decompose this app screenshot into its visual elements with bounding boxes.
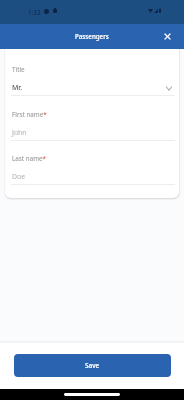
button[interactable]: Close [160,29,175,44]
staticText: 1:32 [28,8,41,17]
staticText: Doe [12,172,26,181]
button[interactable]: Last name* [5,140,179,184]
button[interactable]: Title [5,51,179,95]
staticText: Passengers [75,32,109,40]
staticText: Title [12,65,25,74]
staticText: Mr. [12,83,23,92]
button[interactable]: Save [14,354,171,377]
staticText: First name* [12,110,47,119]
staticText: Save [85,361,100,370]
button[interactable]: First name* [5,96,179,140]
staticText: John [12,128,27,137]
staticText: Last name* [12,154,47,163]
